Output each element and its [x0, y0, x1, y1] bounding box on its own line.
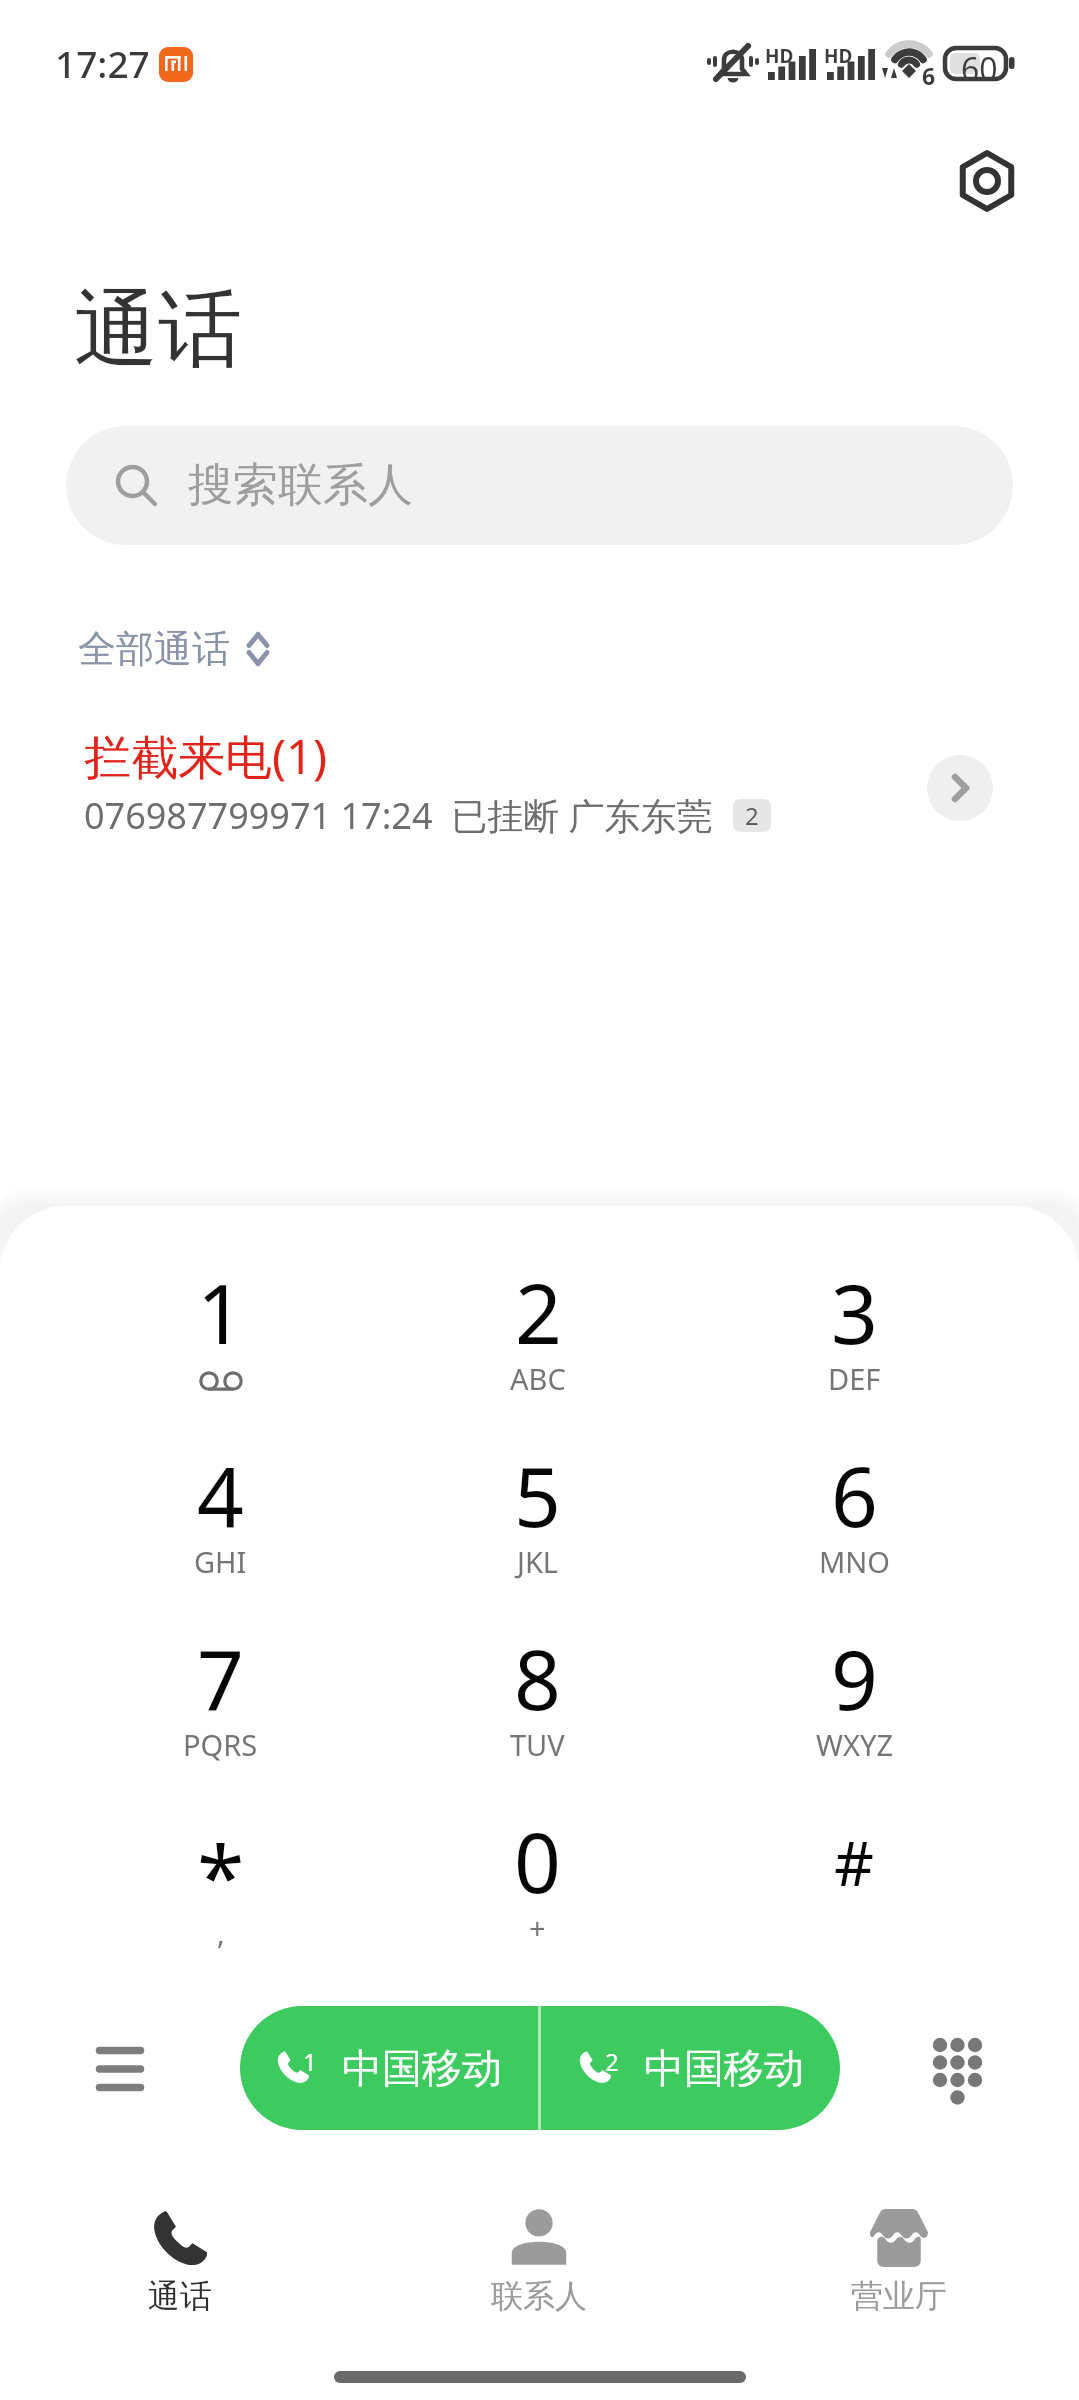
button[interactable]: 拦截来电(1)	[0, 718, 1079, 868]
staticText: 拦截来电(1)	[84, 724, 328, 788]
button[interactable]: More options	[75, 2024, 165, 2114]
button[interactable]: Settings	[942, 136, 1032, 226]
button[interactable]: 营业厅	[719, 2180, 1079, 2330]
staticText: 9	[831, 1622, 878, 1734]
staticText: 2	[605, 2045, 619, 2078]
button[interactable]: 9	[696, 1622, 1013, 1805]
staticText: 4	[197, 1439, 244, 1551]
staticText: TUV	[510, 1725, 565, 1764]
staticText: +	[529, 1908, 546, 1947]
staticText: 通话	[148, 2276, 212, 2316]
button[interactable]: 通话	[0, 2180, 359, 2330]
button[interactable]: *	[62, 1805, 379, 1988]
button[interactable]: 6	[696, 1439, 1013, 1622]
staticText: 搜索联系人	[188, 457, 413, 514]
staticText: *	[197, 1816, 245, 1933]
staticText: HD	[824, 43, 853, 69]
button[interactable]: Hide keypad	[913, 2024, 1003, 2114]
staticText: 6	[922, 60, 936, 91]
button[interactable]: #	[696, 1805, 1013, 1988]
staticText: 076987799971 17:24 已挂断 广东东莞	[84, 791, 713, 840]
staticText: 8	[514, 1622, 561, 1734]
button[interactable]: 全部通话	[78, 610, 270, 688]
staticText: #	[834, 1820, 875, 1904]
staticText: 通话	[74, 277, 242, 383]
staticText: 全部通话	[78, 625, 230, 673]
button[interactable]: 0	[379, 1805, 696, 1988]
staticText: 6	[831, 1439, 878, 1551]
button[interactable]: 1	[62, 1256, 379, 1439]
staticText: 2	[745, 799, 759, 832]
button[interactable]: 5	[379, 1439, 696, 1622]
staticText: ,	[217, 1913, 225, 1952]
staticText: ABC	[510, 1359, 566, 1398]
button[interactable]: 3	[696, 1256, 1013, 1439]
staticText: 营业厅	[851, 2276, 947, 2316]
staticText: 联系人	[491, 2276, 587, 2316]
staticText: GHI	[194, 1542, 247, 1581]
staticText: 0	[514, 1805, 561, 1917]
staticText: 5	[514, 1439, 561, 1551]
button[interactable]: 搜索联系人	[66, 426, 1013, 545]
staticText: 3	[831, 1256, 878, 1368]
button[interactable]: 联系人	[359, 2180, 719, 2330]
staticText: 中国移动	[342, 2043, 502, 2093]
staticText: 7	[197, 1622, 244, 1734]
staticText: 1	[197, 1256, 244, 1368]
staticText: 2	[515, 1256, 562, 1368]
button[interactable]: 1	[240, 2006, 538, 2130]
staticText: MNO	[819, 1542, 890, 1581]
button[interactable]: 7	[62, 1622, 379, 1805]
staticText: 17:27	[55, 38, 150, 88]
staticText: DEF	[828, 1359, 881, 1398]
staticText: PQRS	[183, 1725, 258, 1764]
button[interactable]: 8	[379, 1622, 696, 1805]
staticText: HD	[765, 43, 794, 69]
staticText: JKL	[517, 1542, 559, 1581]
staticText: WXYZ	[816, 1725, 893, 1764]
button[interactable]: 2	[379, 1256, 696, 1439]
button[interactable]: 2	[541, 2006, 840, 2130]
staticText: 中国移动	[644, 2043, 804, 2093]
staticText: 1	[303, 2045, 317, 2078]
button[interactable]: 4	[62, 1439, 379, 1622]
staticText: 60	[961, 47, 998, 91]
button[interactable]: Call details	[927, 755, 993, 821]
